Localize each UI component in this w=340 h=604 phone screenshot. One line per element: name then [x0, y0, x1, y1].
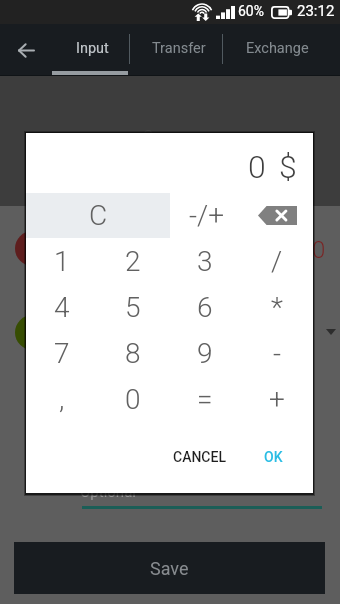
staticText: *	[271, 291, 283, 324]
button[interactable]: 5	[97, 284, 169, 330]
button[interactable]: -	[241, 330, 313, 376]
staticText: -/+	[189, 199, 224, 232]
staticText: Transfer	[152, 40, 206, 57]
button[interactable]: Input	[51, 24, 129, 76]
staticText: Save	[150, 558, 189, 579]
button[interactable]: CANCEL	[165, 441, 234, 473]
staticText: 3	[197, 245, 213, 278]
button[interactable]: -/+	[170, 193, 242, 238]
staticText: 6	[197, 291, 213, 324]
button[interactable]: *	[241, 284, 313, 330]
button[interactable]: +	[241, 376, 313, 422]
button[interactable]: Save	[14, 542, 325, 594]
staticText: 0	[312, 236, 326, 264]
staticText: Input	[76, 40, 109, 57]
staticText: Exchange	[246, 40, 309, 57]
button[interactable]: Backspace	[242, 193, 313, 238]
staticText: 2	[125, 245, 141, 278]
staticText: 0	[125, 383, 141, 416]
button[interactable]: 2	[97, 238, 169, 284]
staticText: 60%	[238, 3, 264, 19]
staticText: Sum	[143, 126, 178, 146]
button[interactable]: 3	[169, 238, 241, 284]
button[interactable]: OK	[256, 441, 291, 473]
staticText: -	[273, 337, 282, 370]
button[interactable]: 0	[97, 376, 169, 422]
staticText: 4	[54, 291, 70, 324]
button[interactable]: 1	[26, 238, 97, 284]
staticText: Optional	[80, 483, 136, 501]
button[interactable]: C	[26, 193, 170, 238]
staticText: 8	[125, 337, 141, 370]
staticText: 1	[54, 245, 70, 278]
staticText: OK	[264, 449, 283, 465]
button[interactable]: Transfer	[130, 24, 222, 76]
staticText: 5	[125, 291, 141, 324]
staticText: 0	[248, 148, 266, 186]
staticText: C	[89, 199, 108, 232]
button[interactable]: ,	[26, 376, 97, 422]
staticText: $	[279, 148, 297, 186]
button[interactable]: 7	[26, 330, 97, 376]
staticText: 23:12	[297, 2, 335, 20]
button[interactable]: /	[241, 238, 313, 284]
staticText: ,	[59, 383, 65, 416]
button[interactable]: 9	[169, 330, 241, 376]
button[interactable]: =	[169, 376, 241, 422]
button[interactable]: Back	[1, 24, 51, 76]
button[interactable]: 6	[169, 284, 241, 330]
staticText: /	[271, 245, 283, 278]
staticText: CANCEL	[173, 449, 226, 465]
staticText: +	[269, 383, 285, 416]
button[interactable]: Exchange	[223, 24, 332, 76]
button[interactable]: 8	[97, 330, 169, 376]
staticText: 9	[197, 337, 213, 370]
button[interactable]: 4	[26, 284, 97, 330]
staticText: 7	[54, 337, 70, 370]
staticText: =	[197, 383, 213, 416]
